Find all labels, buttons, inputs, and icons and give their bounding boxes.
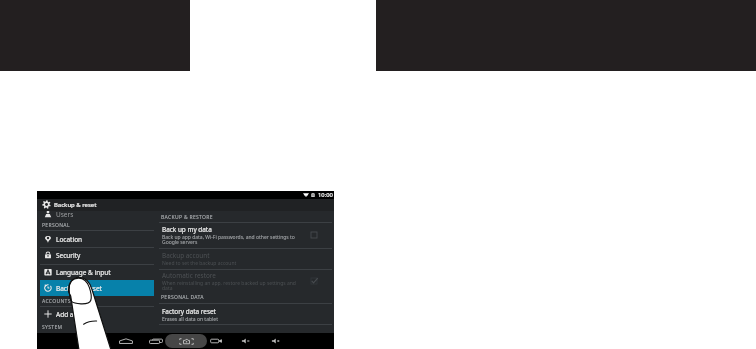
- staticText: Automatic restore: [162, 271, 216, 280]
- staticText: Backup account: [162, 251, 210, 260]
- staticText: Language & input: [56, 268, 111, 277]
- staticText: When reinstalling an app, restore backed…: [162, 280, 301, 292]
- staticText: Back up my data: [162, 225, 212, 234]
- staticText: Security: [56, 251, 81, 260]
- button[interactable]: Language & input: [40, 264, 154, 280]
- button[interactable]: Add account: [40, 306, 154, 322]
- staticText: Factory data reset: [162, 307, 216, 316]
- button[interactable]: Recent apps: [145, 333, 167, 349]
- button[interactable]: Screenshot: [175, 333, 197, 349]
- button[interactable]: Backup account: [156, 251, 334, 269]
- button[interactable]: Factory data reset: [156, 307, 334, 324]
- button[interactable]: Volume down: [235, 333, 257, 349]
- staticText: Back up app data, Wi-Fi passwords, and o…: [162, 234, 301, 246]
- staticText: Users: [56, 210, 74, 219]
- staticText: Backup & reset: [56, 284, 102, 293]
- staticText: Need to set the backup account: [162, 260, 237, 267]
- button[interactable]: Users: [40, 206, 154, 222]
- staticText: BACKUP & RESTORE: [161, 214, 213, 221]
- staticText: Add account: [56, 310, 95, 319]
- button[interactable]: Volume up: [265, 333, 287, 349]
- staticText: Erases all data on tablet: [162, 316, 218, 323]
- staticText: PERSONAL DATA: [161, 294, 204, 301]
- button[interactable]: Backup & reset: [37, 199, 334, 211]
- staticText: PERSONAL: [42, 222, 70, 229]
- button[interactable]: Home: [115, 333, 137, 349]
- staticText: Backup & reset: [54, 201, 97, 209]
- button[interactable]: Location: [40, 231, 154, 247]
- button[interactable]: Back up my data: [156, 225, 334, 248]
- button[interactable]: Camera: [205, 333, 227, 349]
- staticText: ACCOUNTS: [42, 298, 71, 305]
- button[interactable]: Backup & reset: [40, 280, 154, 296]
- button[interactable]: Security: [40, 247, 154, 263]
- staticText: Location: [56, 235, 83, 244]
- staticText: 10:00: [318, 191, 333, 199]
- button[interactable]: Automatic restore: [156, 271, 334, 294]
- staticText: SYSTEM: [42, 324, 63, 331]
